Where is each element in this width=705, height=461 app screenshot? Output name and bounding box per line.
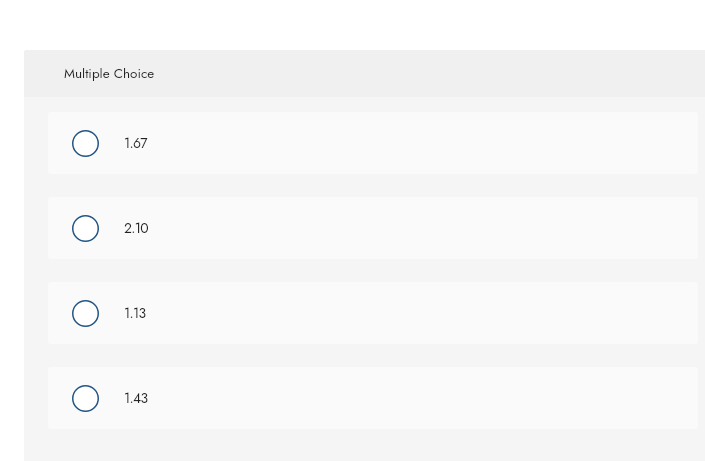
button[interactable]: Select answer [48, 112, 698, 174]
staticText: 1.67 [124, 133, 147, 153]
other: Select answer [72, 215, 99, 242]
button[interactable]: Select answer [48, 282, 698, 344]
button[interactable]: Select answer [48, 197, 698, 259]
staticText: 1.43 [124, 388, 148, 408]
other: Select answer [72, 300, 99, 327]
button[interactable]: Select answer [48, 367, 698, 429]
staticText: Multiple Choice [64, 64, 155, 84]
other: Select answer [72, 130, 99, 157]
staticText: 2.10 [124, 218, 148, 238]
staticText: 1.13 [124, 303, 146, 323]
other: Select answer [72, 385, 99, 412]
